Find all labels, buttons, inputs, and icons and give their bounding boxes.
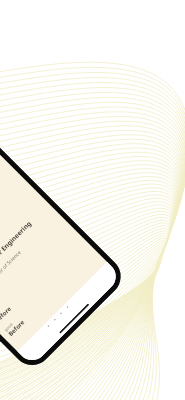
button[interactable]: good: [3, 315, 26, 338]
button[interactable]: good: [0, 301, 13, 324]
button[interactable]: Tab 0: [46, 324, 50, 328]
button[interactable]: Tab 1: [52, 317, 56, 322]
staticText: good: [3, 322, 14, 332]
staticText: Bachelor of Science: [0, 249, 23, 286]
staticText: Computer Engineering: [0, 218, 34, 277]
staticText: Before: [7, 318, 26, 338]
button[interactable]: Tab 2: [58, 311, 62, 315]
button[interactable]: Tab 3: [65, 305, 69, 309]
staticText: Before: [0, 305, 13, 325]
